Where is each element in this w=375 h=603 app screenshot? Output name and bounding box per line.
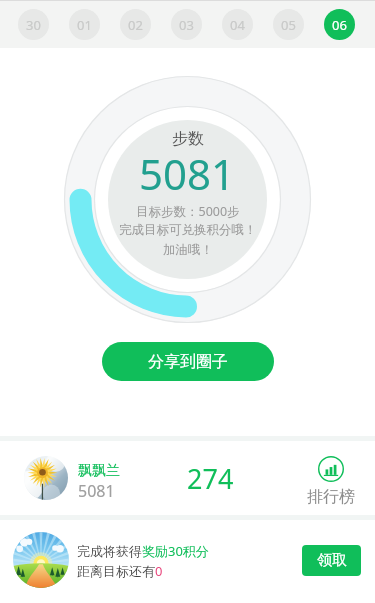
- button[interactable]: 04: [222, 9, 253, 40]
- staticText: 274: [187, 460, 234, 497]
- button[interactable]: 05: [273, 9, 304, 40]
- staticText: 完成将获得奖励30积分: [77, 542, 209, 560]
- staticText: 分享到圈子: [148, 352, 228, 372]
- button[interactable]: 分享到圈子: [102, 342, 274, 381]
- staticText: 加油哦！: [163, 242, 213, 258]
- staticText: 飘飘兰: [78, 462, 120, 480]
- button[interactable]: 30: [18, 9, 49, 40]
- button[interactable]: 领取: [302, 545, 361, 576]
- staticText: 05: [281, 16, 296, 34]
- button[interactable]: 06: [324, 9, 355, 40]
- button[interactable]: 01: [69, 9, 100, 40]
- staticText: 06: [332, 16, 347, 34]
- staticText: 领取: [317, 551, 347, 570]
- staticText: 距离目标还有0: [77, 562, 163, 580]
- staticText: 04: [230, 16, 245, 34]
- staticText: 02: [128, 16, 143, 34]
- staticText: 步数: [172, 129, 204, 149]
- staticText: 排行榜: [307, 487, 355, 507]
- staticText: 完成目标可兑换积分哦！: [119, 222, 257, 238]
- staticText: 5081: [78, 480, 115, 502]
- staticText: 03: [179, 16, 194, 34]
- button[interactable]: 03: [171, 9, 202, 40]
- staticText: 5081: [139, 145, 236, 202]
- staticText: 30: [26, 16, 41, 34]
- button[interactable]: 02: [120, 9, 151, 40]
- staticText: 01: [77, 16, 92, 34]
- staticText: 目标步数：5000步: [136, 203, 240, 220]
- button[interactable]: 排行榜: [307, 456, 355, 507]
- button[interactable]: 飘飘兰: [0, 441, 375, 515]
